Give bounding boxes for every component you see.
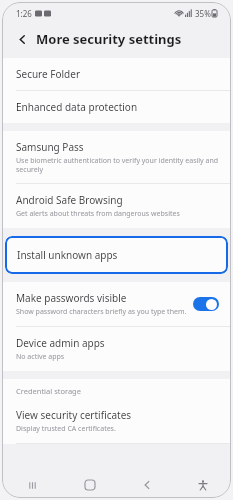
button[interactable]: Install unknown apps [5,236,228,274]
button[interactable]: Accessibility [193,475,213,495]
button[interactable]: Navigate up [12,29,32,49]
button[interactable]: Android Safe Browsing [2,184,231,228]
staticText: Samsung Pass [16,140,84,154]
staticText: Make passwords visible [16,291,127,305]
staticText: Show password characters briefly as you … [16,307,187,317]
staticText: Credential storage [16,386,81,396]
button[interactable]: Secure Folder [2,58,231,91]
staticText: Device admin apps [16,336,105,350]
button[interactable]: Back [135,473,159,497]
button[interactable]: Samsung Pass [2,131,231,184]
staticText: Android Safe Browsing [16,193,123,207]
staticText: No active apps [16,352,65,362]
button[interactable]: Home [78,473,102,497]
staticText: More security settings [36,30,182,48]
button[interactable]: View security certificates [2,399,231,444]
button[interactable]: Make passwords visible [2,282,231,327]
staticText: Use biometric authentication to verify y… [16,156,219,174]
staticText: Display trusted CA certificates. [16,424,116,434]
button[interactable]: Make passwords visible toggle [193,297,219,311]
button[interactable]: Enhanced data protection [2,91,231,123]
staticText: View security certificates [16,408,132,422]
staticText: 35% [195,8,211,19]
staticText: Enhanced data protection [16,100,138,114]
button[interactable]: Recents [20,473,44,497]
staticText: Secure Folder [16,67,81,81]
staticText: Install unknown apps [17,248,118,262]
staticText: 1:26 [16,8,32,19]
button[interactable]: Device admin apps [2,327,231,371]
staticText: Get alerts about threats from dangerous … [16,209,180,219]
